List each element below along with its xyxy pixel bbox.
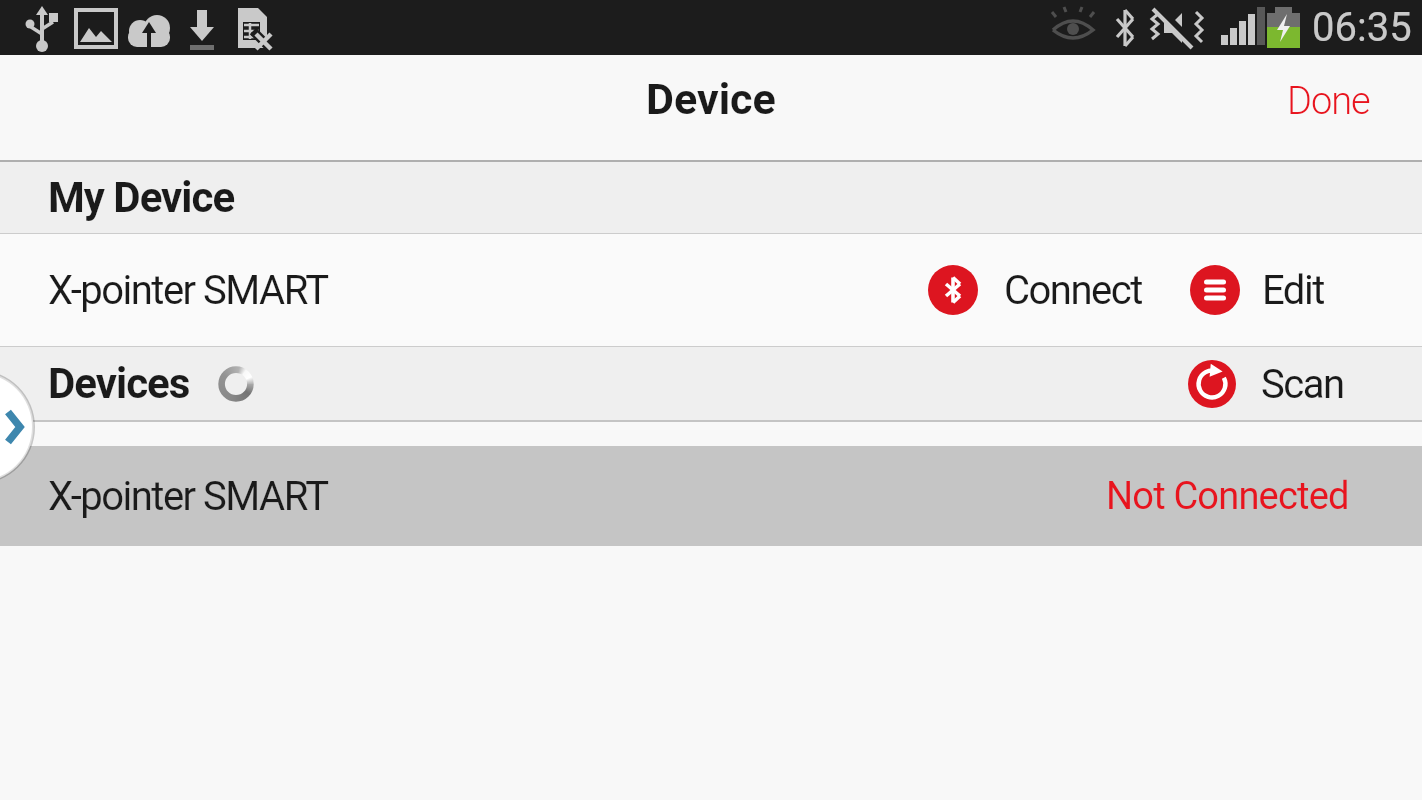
staticText: X-pointer SMART bbox=[48, 267, 328, 314]
button[interactable]: X-pointer SMART bbox=[0, 234, 1422, 346]
staticText: Edit bbox=[1262, 267, 1324, 314]
staticText: Scan bbox=[1261, 361, 1344, 408]
button[interactable]: Edit bbox=[1190, 265, 1324, 315]
staticText: My Device bbox=[48, 173, 235, 222]
button[interactable]: X-pointer SMART bbox=[0, 446, 1422, 546]
staticText: Done bbox=[1287, 79, 1370, 124]
button[interactable] bbox=[0, 367, 120, 487]
button[interactable]: Scan bbox=[1188, 360, 1344, 408]
staticText: Connect bbox=[1004, 267, 1142, 314]
staticText: 06:35 bbox=[1312, 4, 1412, 51]
staticText: Not Connected bbox=[1106, 474, 1349, 519]
staticText: Devices bbox=[48, 359, 190, 408]
button[interactable]: Done bbox=[1287, 79, 1370, 124]
staticText: X-pointer SMART bbox=[48, 473, 328, 520]
button[interactable]: Connect bbox=[928, 265, 1142, 315]
staticText: Device bbox=[646, 74, 776, 124]
